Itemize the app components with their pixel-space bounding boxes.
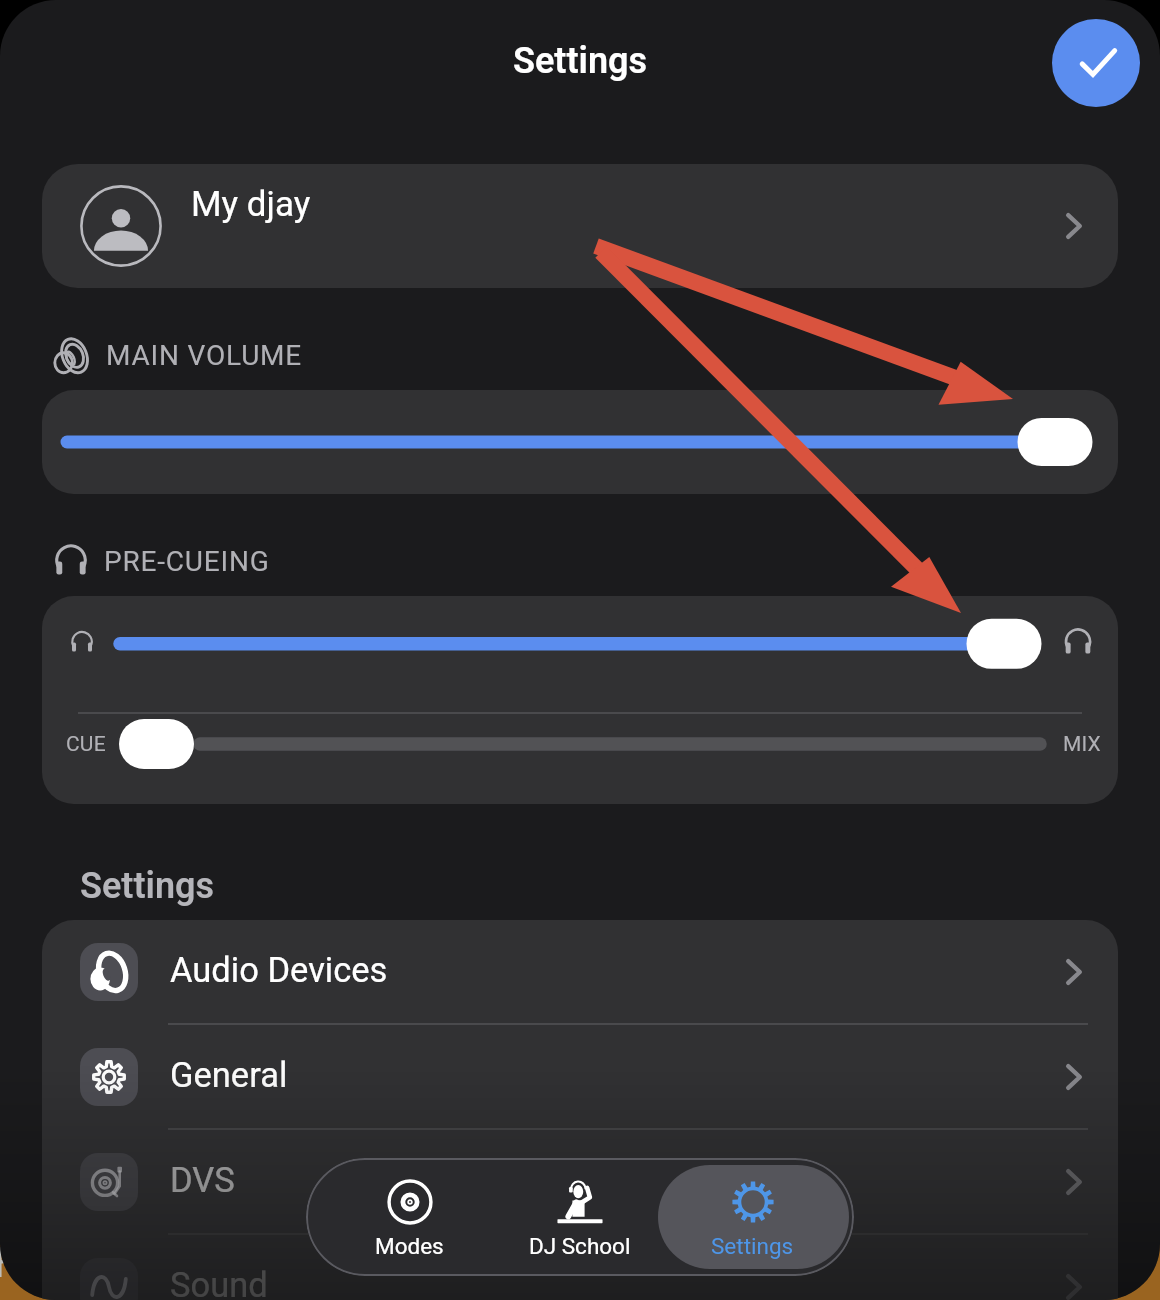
button[interactable]: DJ School xyxy=(490,1158,670,1276)
button[interactable]: Modes xyxy=(319,1158,499,1276)
button[interactable]: Done xyxy=(1052,19,1140,107)
button[interactable]: DVS xyxy=(42,1130,1118,1233)
staticText: CUE xyxy=(66,732,106,757)
staticText: Modes xyxy=(375,1233,444,1259)
button[interactable] xyxy=(42,596,1118,706)
staticText: PRE-CUEING xyxy=(104,545,270,578)
button[interactable]: My djay xyxy=(42,164,1118,288)
staticText: DVS xyxy=(170,1160,235,1200)
staticText: Fr xyxy=(0,1238,31,1287)
button[interactable] xyxy=(42,390,1118,494)
button[interactable]: Settings xyxy=(662,1158,842,1276)
staticText: DJ School xyxy=(529,1233,631,1259)
staticText: Audio Devices xyxy=(170,950,388,990)
staticText: Sound xyxy=(170,1265,268,1300)
staticText: MAIN VOLUME xyxy=(106,339,303,372)
staticText: General xyxy=(170,1055,288,1095)
button[interactable]: CUE xyxy=(42,714,1118,804)
staticText: Settings xyxy=(513,40,647,82)
staticText: Settings xyxy=(80,865,214,907)
staticText: Settings xyxy=(711,1233,794,1259)
button[interactable]: Sound xyxy=(42,1235,1118,1300)
staticText: MIX xyxy=(1063,732,1101,757)
button[interactable]: Audio Devices xyxy=(42,920,1118,1023)
button[interactable]: General xyxy=(42,1025,1118,1128)
staticText: My djay xyxy=(191,184,311,225)
